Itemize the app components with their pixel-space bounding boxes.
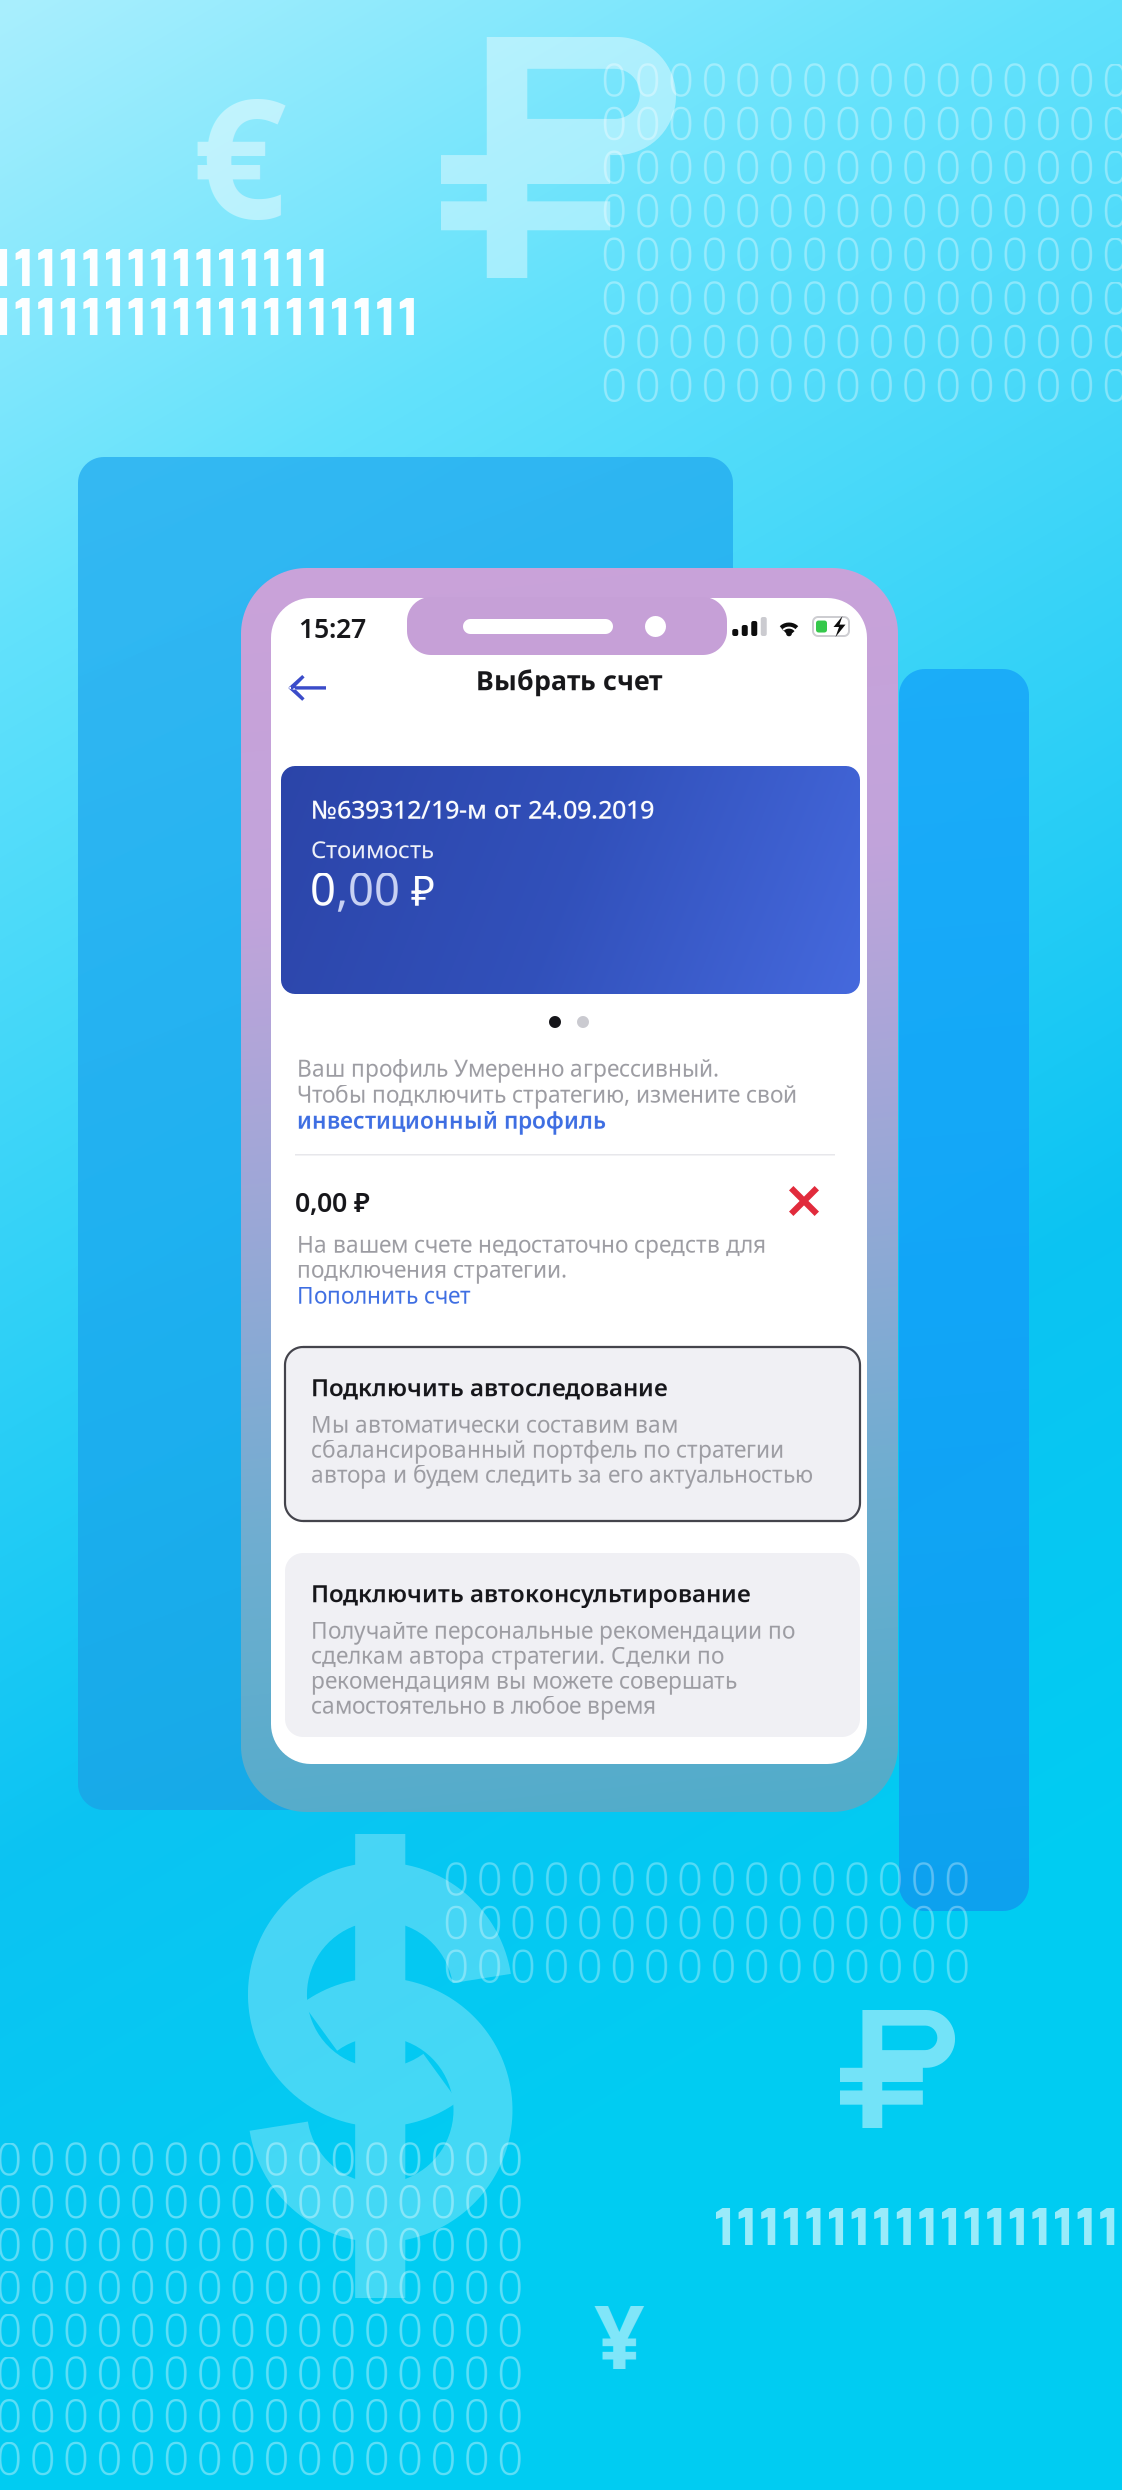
staticText: 0 bbox=[430, 2171, 456, 2231]
staticText: 0 bbox=[196, 2428, 222, 2488]
staticText: 0 bbox=[877, 1935, 903, 1995]
staticText: 0 bbox=[263, 2342, 289, 2402]
staticText: 0 bbox=[601, 223, 627, 284]
staticText: ₽ bbox=[400, 862, 435, 917]
staticText: 0 bbox=[801, 136, 827, 196]
staticText: 0 bbox=[29, 2342, 55, 2402]
staticText: 0 bbox=[1102, 93, 1122, 153]
staticText: 0 bbox=[935, 267, 961, 327]
staticText: 0 bbox=[0, 2299, 22, 2359]
staticText: сбалансированный портфель по стратегии bbox=[311, 1434, 784, 1464]
button[interactable]: Подключить автоследование bbox=[285, 1347, 860, 1521]
staticText: 0 bbox=[735, 223, 761, 284]
staticText: 0 bbox=[230, 2256, 256, 2317]
staticText: 0 bbox=[902, 180, 928, 240]
staticText: 0 bbox=[735, 311, 761, 371]
staticText: 0 bbox=[1069, 311, 1095, 371]
staticText: 0 bbox=[735, 93, 761, 153]
staticText: 0 bbox=[330, 2214, 356, 2274]
staticText: 0 bbox=[63, 2256, 89, 2317]
staticText: 0 bbox=[610, 1892, 636, 1952]
staticText: 0 bbox=[902, 136, 928, 196]
staticText: 0 bbox=[835, 49, 861, 109]
staticText: 0 bbox=[1002, 49, 1028, 109]
staticText: 0 bbox=[643, 1892, 669, 1952]
staticText: 0 bbox=[668, 223, 694, 284]
staticText: 0 bbox=[1069, 267, 1095, 327]
staticText: 0 bbox=[497, 2342, 523, 2402]
staticText: 0 bbox=[902, 267, 928, 327]
staticText: 0 bbox=[902, 311, 928, 371]
staticText: 0 bbox=[497, 2299, 523, 2359]
staticText: 0 bbox=[196, 2342, 222, 2402]
staticText: 0 bbox=[130, 2299, 156, 2359]
staticText: 0 bbox=[163, 2128, 189, 2188]
staticText: 0 bbox=[710, 1892, 736, 1952]
staticText: 0 bbox=[735, 136, 761, 196]
staticText: 0 bbox=[130, 2342, 156, 2402]
staticText: 0 bbox=[844, 1935, 870, 1995]
staticText: 0 bbox=[163, 2256, 189, 2317]
button[interactable]: Пополнить счет bbox=[297, 1280, 471, 1310]
staticText: 0 bbox=[297, 2299, 323, 2359]
staticText: 0 bbox=[363, 2171, 389, 2231]
staticText: 0 bbox=[263, 2428, 289, 2488]
staticText: 0 bbox=[363, 2214, 389, 2274]
staticText: 0 bbox=[196, 2214, 222, 2274]
staticText: 0 bbox=[634, 180, 660, 240]
staticText: 0 bbox=[510, 1892, 536, 1952]
button[interactable]: Подключить автоконсультирование bbox=[285, 1553, 860, 1737]
staticText: 0 bbox=[430, 2342, 456, 2402]
staticText: 0 bbox=[768, 180, 794, 240]
staticText: 0 bbox=[397, 2385, 423, 2445]
staticText: 0 bbox=[96, 2214, 122, 2274]
staticText: 0 bbox=[543, 1848, 569, 1908]
staticText: 0 bbox=[363, 2256, 389, 2317]
staticText: 0 bbox=[263, 2128, 289, 2188]
staticText: 0 bbox=[297, 2385, 323, 2445]
staticText: 0 bbox=[777, 1892, 803, 1952]
staticText: 0 bbox=[497, 2128, 523, 2188]
staticText: 0 bbox=[701, 180, 727, 240]
staticText: 0 bbox=[701, 267, 727, 327]
staticText: 0 bbox=[634, 311, 660, 371]
staticText: Мы автоматически составим вам bbox=[311, 1409, 678, 1439]
staticText: 0 bbox=[397, 2342, 423, 2402]
staticText: 0 bbox=[968, 136, 994, 196]
staticText: 0 bbox=[877, 1892, 903, 1952]
staticText: 0 bbox=[29, 2256, 55, 2317]
staticText: 0 bbox=[363, 2428, 389, 2488]
staticText: 0 bbox=[363, 2299, 389, 2359]
staticText: 0 bbox=[801, 49, 827, 109]
staticText: 0 bbox=[744, 1892, 770, 1952]
staticText: 0 bbox=[634, 93, 660, 153]
button[interactable]: инвестиционный профиль bbox=[297, 1105, 606, 1135]
staticText: 0 bbox=[668, 311, 694, 371]
staticText: 0 bbox=[1102, 267, 1122, 327]
staticText: 0 bbox=[163, 2214, 189, 2274]
staticText: 0 bbox=[63, 2171, 89, 2231]
staticText: 0 bbox=[1002, 180, 1028, 240]
staticText: 0 bbox=[497, 2214, 523, 2274]
staticText: 0 bbox=[464, 2214, 490, 2274]
staticText: 0 bbox=[610, 1935, 636, 1995]
staticText: 0 bbox=[1102, 223, 1122, 284]
staticText: 0 bbox=[877, 1848, 903, 1908]
staticText: 0 bbox=[1035, 136, 1061, 196]
staticText: 0 bbox=[744, 1935, 770, 1995]
staticText: 0 bbox=[96, 2342, 122, 2402]
staticText: 0 bbox=[1035, 49, 1061, 109]
staticText: 0 bbox=[96, 2256, 122, 2317]
staticText: 0 bbox=[63, 2385, 89, 2445]
staticText: 0 bbox=[63, 2428, 89, 2488]
staticText: 0 bbox=[968, 180, 994, 240]
staticText: 0 bbox=[0, 2128, 22, 2188]
staticText: 0 bbox=[1002, 136, 1028, 196]
staticText: 0 bbox=[497, 2428, 523, 2488]
button[interactable]: Back bbox=[277, 665, 337, 711]
staticText: рекомендациям вы можете совершать bbox=[311, 1665, 737, 1695]
staticText: 0 bbox=[1035, 223, 1061, 284]
staticText: 0 bbox=[497, 2385, 523, 2445]
staticText: 0 bbox=[29, 2428, 55, 2488]
staticText: 0 bbox=[868, 267, 894, 327]
